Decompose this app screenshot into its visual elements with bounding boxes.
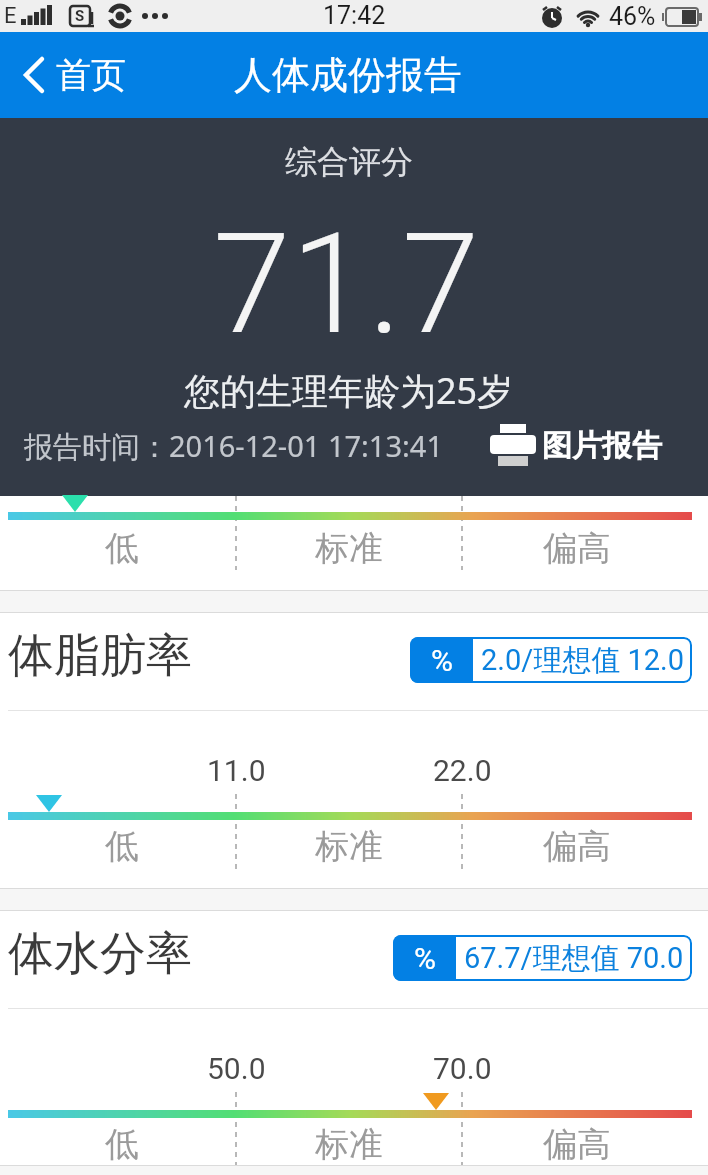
staticText: 低: [105, 825, 139, 868]
staticText: 偏高: [543, 825, 611, 868]
staticText: 17:42: [323, 1, 386, 30]
staticText: 体水分率: [8, 925, 192, 983]
staticText: 低: [105, 1123, 139, 1166]
staticText: 50.0: [207, 1051, 266, 1086]
staticText: 标准: [315, 825, 383, 868]
staticText: 低: [105, 527, 139, 570]
staticText: 体脂肪率: [8, 627, 192, 685]
staticText: 11.0: [207, 753, 266, 788]
staticText: %: [414, 941, 436, 976]
staticText: 标准: [315, 527, 383, 570]
staticText: 人体成份报告: [234, 51, 462, 99]
button[interactable]: 首页: [20, 53, 126, 97]
staticText: 报告时间：2016-12-01 17:13:41: [24, 426, 443, 466]
staticText: 图片报告: [542, 427, 662, 465]
staticText: 22.0: [433, 753, 492, 788]
staticText: 偏高: [543, 527, 611, 570]
staticText: 您的生理年龄为25岁: [184, 366, 514, 415]
staticText: 2.0/理想值 12.0: [481, 642, 684, 679]
button[interactable]: %: [410, 637, 692, 683]
staticText: 偏高: [543, 1123, 611, 1166]
staticText: 综合评分: [285, 142, 413, 182]
staticText: 71.7: [213, 202, 480, 366]
button[interactable]: %: [393, 935, 692, 981]
staticText: 67.7/理想值 70.0: [464, 940, 684, 977]
button[interactable]: 图片报告: [490, 424, 662, 468]
staticText: 标准: [315, 1123, 383, 1166]
staticText: E: [4, 3, 17, 29]
staticText: S: [75, 7, 85, 25]
staticText: 首页: [56, 53, 126, 97]
staticText: 70.0: [433, 1051, 492, 1086]
staticText: 46%: [609, 2, 656, 31]
staticText: %: [431, 643, 453, 678]
